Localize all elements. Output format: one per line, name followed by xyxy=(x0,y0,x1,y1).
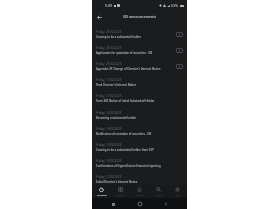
staticText: Appendix 3Y Change of Director's Interes… xyxy=(96,67,161,71)
staticText: SIS announcements xyxy=(123,14,157,19)
button[interactable]: Friday, 10.04.2025 xyxy=(92,143,187,159)
staticText: Friday, 25.04.2025 xyxy=(96,62,122,66)
button[interactable]: Watchlist xyxy=(111,185,130,198)
staticText: Notification of cessation of securities … xyxy=(96,132,152,136)
staticText: Initial Director's Interest Notice xyxy=(96,180,138,184)
staticText: Form 603 Notice of initial Substantial H… xyxy=(96,99,155,103)
staticText: Friday, 10.04.2025 xyxy=(96,159,122,163)
staticText: More xyxy=(175,193,181,196)
staticText: Friday, 10.04.2025 xyxy=(96,175,122,179)
button[interactable]: Recent apps xyxy=(108,199,118,209)
button[interactable]: Search xyxy=(149,185,168,198)
staticText: Markets xyxy=(135,193,145,196)
button[interactable]: Friday, 17.04.2025 xyxy=(92,94,187,110)
staticText: Final Director's Interest Notice xyxy=(96,83,137,87)
staticText: Friday, 17.04.2025 xyxy=(96,94,122,98)
staticText: Ceasing to be a substantial holder xyxy=(96,35,141,39)
button[interactable]: Open document xyxy=(175,47,183,54)
staticText: Portfolio xyxy=(97,193,107,196)
button[interactable]: Home xyxy=(135,199,145,209)
button[interactable]: Friday, 10.04.2025 xyxy=(92,159,187,175)
staticText: Friday, 16.04.2025 xyxy=(96,111,122,115)
button[interactable]: Portfolio xyxy=(92,185,111,198)
button[interactable]: Friday, 25.04.2025 xyxy=(92,46,187,62)
staticText: Friday, 17.04.2025 xyxy=(96,78,122,82)
button[interactable]: Friday, 25.04.2025 xyxy=(92,30,187,46)
button[interactable]: Back xyxy=(94,12,104,22)
button[interactable]: Back xyxy=(161,199,171,209)
staticText: Friday, 16.04.2025 xyxy=(96,127,122,131)
staticText: Friday, 25.04.2025 xyxy=(96,30,122,34)
button[interactable]: Friday, 10.04.2025 xyxy=(92,175,187,191)
staticText: Friday, 25.04.2025 xyxy=(96,46,122,50)
staticText: Friday, 10.04.2025 xyxy=(96,143,122,147)
button[interactable]: Markets xyxy=(130,185,149,198)
staticText: Confirmation of Signed future financial … xyxy=(96,164,161,168)
button[interactable]: Open document xyxy=(175,31,183,38)
button[interactable]: Open document xyxy=(175,63,183,70)
staticText: Search xyxy=(155,193,163,196)
button[interactable]: Friday, 16.04.2025 xyxy=(92,127,187,143)
button[interactable]: Friday, 17.04.2025 xyxy=(92,78,187,94)
staticText: Becoming a substantial holder xyxy=(96,116,137,120)
staticText: 5:09 xyxy=(105,3,113,8)
staticText: 63% xyxy=(171,3,179,8)
button[interactable]: More xyxy=(168,185,187,198)
staticText: Watchlist xyxy=(115,193,126,196)
staticText: Application for quotation of securities … xyxy=(96,51,153,55)
button[interactable]: Friday, 16.04.2025 xyxy=(92,111,187,127)
button[interactable]: Friday, 25.04.2025 xyxy=(92,62,187,78)
staticText: Ceasing to be a substantial holder from … xyxy=(96,148,154,152)
